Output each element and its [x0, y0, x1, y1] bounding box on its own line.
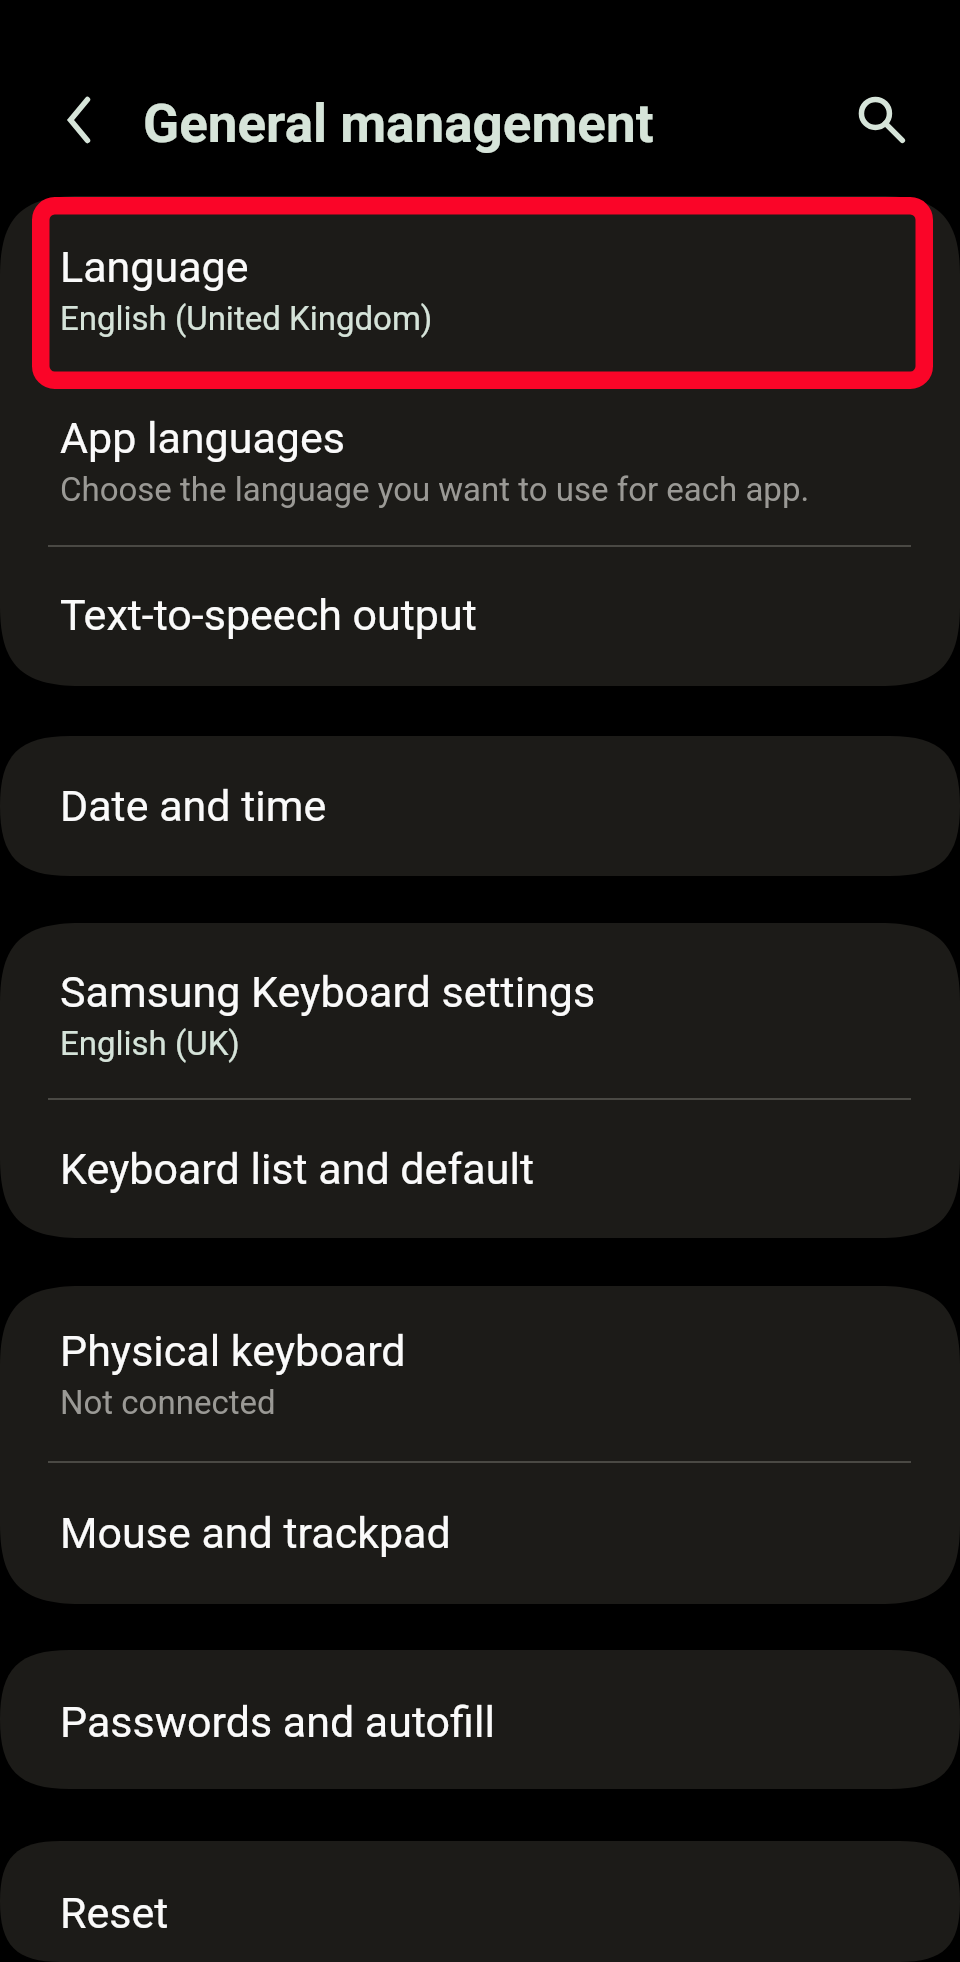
staticText: Text-to-speech output	[60, 590, 477, 640]
button[interactable]: App languages	[0, 390, 960, 545]
button[interactable]: Reset	[0, 1841, 960, 1962]
staticText: Reset	[60, 1888, 169, 1938]
staticText: Date and time	[60, 781, 327, 831]
button[interactable]: Search	[843, 81, 923, 161]
button[interactable]: Keyboard list and default	[0, 1100, 960, 1238]
staticText: Passwords and autofill	[60, 1697, 495, 1747]
button[interactable]: Mouse and trackpad	[0, 1463, 960, 1604]
staticText: Mouse and trackpad	[60, 1508, 451, 1558]
button[interactable]: Passwords and autofill	[0, 1650, 960, 1789]
staticText: App languages	[60, 413, 345, 463]
staticText: Keyboard list and default	[60, 1144, 534, 1194]
staticText: General management	[143, 93, 654, 155]
button[interactable]: Navigate up	[39, 80, 119, 160]
staticText: English (United Kingdom)	[60, 299, 433, 338]
button[interactable]: Date and time	[0, 736, 960, 876]
button[interactable]: Text-to-speech output	[0, 547, 960, 686]
staticText: English (UK)	[60, 1024, 240, 1063]
staticText: Not connected	[60, 1383, 276, 1422]
staticText: Language	[60, 242, 249, 292]
button[interactable]: Language	[0, 196, 960, 390]
button[interactable]: Samsung Keyboard settings	[0, 923, 960, 1098]
button[interactable]: Physical keyboard	[0, 1286, 960, 1461]
staticText: Physical keyboard	[60, 1326, 406, 1376]
staticText: Choose the language you want to use for …	[60, 470, 810, 509]
staticText: Samsung Keyboard settings	[60, 967, 596, 1017]
